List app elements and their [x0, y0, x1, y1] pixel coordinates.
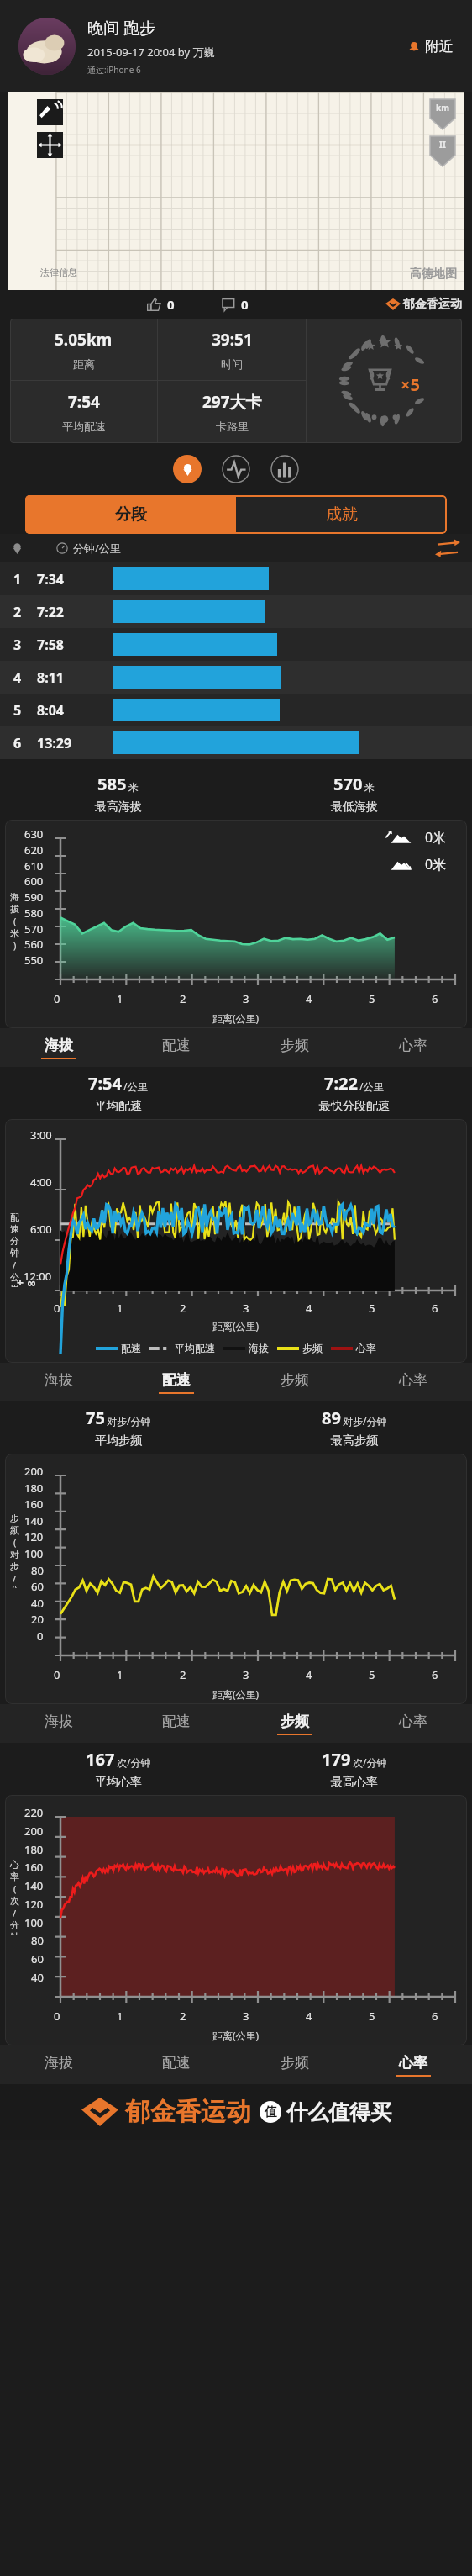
staticText: 7:54: [88, 1072, 122, 1095]
button[interactable]: 2: [0, 595, 472, 628]
button[interactable]: 0: [217, 293, 254, 315]
button[interactable]: 心率: [354, 2045, 472, 2084]
button[interactable]: 配速: [118, 2045, 235, 2084]
button[interactable]: 6: [0, 726, 472, 759]
button[interactable]: 海拔: [0, 2045, 118, 2084]
staticText: 179: [322, 1748, 351, 1771]
staticText: 米: [10, 927, 19, 939]
staticText: 160: [24, 1497, 44, 1512]
staticText: 步频: [302, 1342, 323, 1354]
button[interactable]: Map: [173, 455, 202, 483]
staticText: 4: [306, 991, 312, 1006]
staticText: 3: [13, 636, 37, 654]
button[interactable]: 297大卡: [158, 381, 306, 443]
button[interactable]: 7:54: [10, 381, 157, 443]
staticText: 6: [432, 1301, 438, 1316]
button[interactable]: 75: [0, 1401, 236, 1454]
button[interactable]: 配速: [118, 1704, 235, 1743]
staticText: 最高心率: [331, 1775, 378, 1790]
button[interactable]: 167: [0, 1743, 236, 1795]
button[interactable]: 心率: [354, 1363, 472, 1401]
button[interactable]: 海拔: [0, 1363, 118, 1401]
staticText: 39:51: [212, 329, 253, 351]
staticText: 7:22: [324, 1072, 358, 1095]
button[interactable]: 4: [0, 661, 472, 694]
button[interactable]: 179: [236, 1743, 472, 1795]
staticText: (: [13, 1882, 17, 1895]
button[interactable]: 心率: [354, 1028, 472, 1067]
staticText: 2: [180, 1667, 186, 1682]
button[interactable]: Chart: [270, 455, 299, 483]
staticText: 180: [24, 1481, 44, 1496]
staticText: 100: [24, 1546, 44, 1561]
button[interactable]: 附近: [403, 33, 459, 61]
staticText: 60: [31, 1951, 44, 1966]
staticText: 海拔: [45, 1037, 73, 1054]
button[interactable]: 585: [0, 768, 236, 820]
staticText: 80: [31, 1933, 44, 1948]
button[interactable]: 步频: [235, 1704, 354, 1743]
staticText: 附近: [425, 38, 454, 55]
staticText: 20: [31, 1612, 44, 1627]
button[interactable]: II: [430, 136, 455, 166]
staticText: 89: [322, 1407, 341, 1429]
staticText: 率: [10, 1871, 19, 1882]
button[interactable]: 心率: [354, 1704, 472, 1743]
button[interactable]: 成就: [236, 495, 447, 534]
staticText: 配速: [121, 1342, 141, 1354]
staticText: 40: [31, 1596, 44, 1611]
button[interactable]: 配速: [118, 1363, 235, 1401]
staticText: 6: [432, 991, 438, 1006]
staticText: 7:58: [37, 636, 113, 654]
button[interactable]: ×5: [334, 330, 435, 431]
staticText: 560: [24, 937, 44, 952]
staticText: 570: [24, 921, 44, 937]
staticText: 速: [10, 1223, 19, 1235]
staticText: 通过:iPhone 6: [87, 64, 141, 76]
staticText: 13:29: [37, 734, 113, 752]
button[interactable]: Sort: [435, 539, 460, 557]
button[interactable]: Map control: [37, 132, 63, 158]
staticText: 最高海拔: [95, 800, 142, 815]
staticText: 5: [13, 701, 37, 720]
staticText: 0: [241, 296, 249, 313]
staticText: 0: [54, 991, 60, 1006]
button[interactable]: km: [430, 99, 455, 129]
staticText: 步: [10, 1560, 19, 1572]
button[interactable]: 7:54: [0, 1067, 236, 1119]
staticText: /: [13, 1259, 17, 1271]
button[interactable]: 郁金香运动: [81, 2096, 391, 2128]
button[interactable]: 步频: [235, 2045, 354, 2084]
button[interactable]: 39:51: [158, 319, 306, 380]
button[interactable]: 海拔: [0, 1704, 118, 1743]
staticText: 分: [10, 1919, 19, 1931]
staticText: + ∞: [17, 1275, 37, 1291]
staticText: 海拔: [249, 1342, 269, 1354]
button[interactable]: 步频: [235, 1028, 354, 1067]
staticText: 2: [180, 991, 186, 1006]
button[interactable]: 1: [0, 562, 472, 595]
staticText: 卡路里: [216, 420, 249, 433]
button[interactable]: 海拔: [0, 1028, 118, 1067]
staticText: 297大卡: [202, 391, 262, 413]
staticText: 630: [24, 826, 44, 842]
staticText: 步频: [281, 2054, 309, 2072]
button[interactable]: 7:22: [236, 1067, 472, 1119]
button[interactable]: 0: [142, 293, 180, 315]
button[interactable]: 570: [236, 768, 472, 820]
button[interactable]: 配速: [118, 1028, 235, 1067]
staticText: 时间: [221, 357, 243, 371]
button[interactable]: Map control: [37, 99, 63, 125]
button[interactable]: 89: [236, 1401, 472, 1454]
button[interactable]: Activity: [222, 455, 250, 483]
button[interactable]: 步频: [235, 1363, 354, 1401]
staticText: 晚间 跑步: [87, 17, 155, 39]
button[interactable]: 5: [0, 694, 472, 726]
button[interactable]: 3: [0, 628, 472, 661]
staticText: 0米: [425, 855, 447, 874]
button[interactable]: 分段: [25, 495, 236, 534]
button[interactable]: 5.05km: [10, 319, 157, 380]
staticText: 180: [24, 1842, 44, 1857]
button[interactable]: 郁金香运动: [385, 297, 462, 312]
staticText: 米: [128, 781, 139, 794]
